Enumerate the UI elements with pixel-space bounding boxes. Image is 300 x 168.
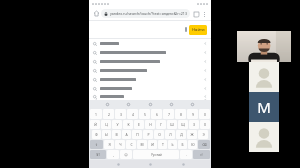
button[interactable]: 6 (151, 109, 162, 119)
staticText: К (127, 122, 130, 127)
button[interactable]: А (122, 130, 131, 139)
button[interactable]: Ш (167, 120, 177, 129)
button[interactable]: З (189, 120, 199, 129)
button[interactable]: Л (165, 130, 175, 139)
staticText: 7 (168, 112, 170, 117)
staticText: М (140, 142, 144, 147)
button[interactable]: К (123, 120, 133, 129)
button[interactable] (89, 66, 211, 75)
button[interactable]: 1 (90, 109, 102, 119)
button[interactable]: Settings (125, 101, 132, 108)
staticText: . (186, 152, 187, 157)
button[interactable]: Participant M (249, 92, 279, 122)
button[interactable]: Й (90, 120, 100, 129)
staticText: Ф (95, 132, 98, 137)
staticText: З (193, 122, 195, 127)
button[interactable]: Ц (101, 120, 111, 129)
button[interactable] (89, 84, 211, 93)
button[interactable]: Ч (115, 140, 125, 149)
staticText: ⌫ (202, 143, 207, 147)
button[interactable]: В (112, 130, 121, 139)
button[interactable]: М (137, 140, 147, 149)
staticText: 1 (95, 112, 97, 117)
staticText: Р (147, 132, 150, 137)
button[interactable]: Э (198, 130, 208, 139)
button[interactable]: , (107, 150, 119, 159)
button[interactable]: 0 (199, 109, 210, 119)
button[interactable] (89, 48, 211, 57)
button[interactable]: Найти (189, 25, 207, 35)
button[interactable]: Г (156, 120, 166, 129)
button[interactable]: Х (200, 120, 210, 129)
button[interactable]: Back (179, 160, 187, 168)
button[interactable]: Enter (189, 101, 196, 108)
button[interactable] (93, 24, 189, 35)
staticText: Ы (105, 132, 108, 137)
staticText: Русский (151, 153, 162, 157)
button[interactable]: 8 (175, 109, 186, 119)
button[interactable]: Щ (178, 120, 188, 129)
button[interactable]: Ы (102, 130, 111, 139)
button[interactable]: П (132, 130, 142, 139)
button[interactable]: Ь (168, 140, 177, 149)
button[interactable]: Voice (147, 101, 154, 108)
button[interactable] (89, 39, 211, 48)
staticText: M (257, 97, 271, 117)
button[interactable]: Ф (92, 130, 101, 139)
button[interactable]: 9 (187, 109, 198, 119)
staticText: 2 (108, 112, 110, 117)
button[interactable]: Д (176, 130, 186, 139)
staticText: 9 (192, 112, 194, 117)
button[interactable]: ⇧ (90, 140, 103, 149)
staticText: 4 (132, 112, 134, 117)
button[interactable]: Active speaker video (237, 31, 291, 62)
button[interactable]: Е (134, 120, 144, 129)
staticText: Ь (171, 142, 174, 147)
staticText: Ж (190, 132, 194, 137)
button[interactable]: Tabs (192, 10, 200, 18)
button[interactable]: С (126, 140, 136, 149)
button[interactable]: 7 (163, 109, 174, 119)
staticText: 6 (156, 112, 158, 117)
button[interactable]: Home (146, 160, 154, 168)
button[interactable] (89, 93, 211, 100)
button[interactable]: Participant 3 (249, 122, 279, 152)
button[interactable]: И (148, 140, 157, 149)
button[interactable]: 3 (115, 109, 126, 119)
staticText: Щ (181, 122, 185, 127)
button[interactable]: Home (92, 9, 101, 18)
button[interactable]: ⏎ (193, 150, 210, 159)
staticText: Н (149, 122, 152, 127)
button[interactable]: yandex.ru/search/touch/?text=яндекс&lr=2… (101, 9, 190, 18)
staticText: Ц (105, 122, 108, 127)
button[interactable] (89, 75, 211, 84)
button[interactable] (89, 57, 211, 66)
button[interactable]: Ю (188, 140, 197, 149)
button[interactable]: ☺ (120, 150, 132, 159)
staticText: Б (181, 142, 184, 147)
staticText: Э (202, 132, 205, 137)
button[interactable]: Н (145, 120, 155, 129)
button[interactable]: У (112, 120, 122, 129)
button[interactable]: Р (143, 130, 153, 139)
staticText: А (125, 132, 128, 137)
button[interactable]: Ж (187, 130, 197, 139)
button[interactable]: Т (158, 140, 167, 149)
button[interactable]: Русский (133, 150, 179, 159)
button[interactable]: Я (104, 140, 114, 149)
button[interactable]: 4 (127, 109, 138, 119)
button[interactable]: 5 (139, 109, 150, 119)
button[interactable]: Emoji (104, 101, 111, 108)
button[interactable]: О (154, 130, 164, 139)
button[interactable]: !#1 (90, 150, 106, 159)
staticText: Ш (170, 122, 174, 127)
button[interactable]: Б (178, 140, 187, 149)
button[interactable]: More options (200, 10, 208, 18)
button[interactable]: 2 (103, 109, 114, 119)
button[interactable]: ⌫ (198, 140, 210, 149)
button[interactable]: Recents (114, 160, 122, 168)
staticText: Ю (191, 142, 195, 147)
button[interactable]: Sticker (168, 101, 175, 108)
button[interactable]: Participant 1 (249, 62, 279, 92)
